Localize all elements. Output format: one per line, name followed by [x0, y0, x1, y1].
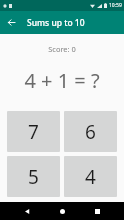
staticText: 7	[28, 119, 39, 145]
staticText: 4	[85, 164, 96, 190]
staticText: 6	[85, 119, 96, 145]
button[interactable]: 4	[64, 156, 117, 197]
staticText: Sums up to 10	[27, 17, 85, 29]
staticText: 4 + 1 = ?	[24, 67, 100, 94]
button[interactable]: Back	[3, 14, 20, 31]
button[interactable]: Recent apps	[89, 203, 105, 219]
button[interactable]: 5	[7, 156, 60, 197]
button[interactable]: Back	[19, 203, 35, 219]
button[interactable]: 6	[64, 111, 117, 152]
staticText: 10:59	[109, 2, 122, 9]
button[interactable]: Home	[54, 203, 70, 219]
staticText: 5	[28, 164, 39, 190]
button[interactable]: 7	[7, 111, 60, 152]
staticText: Score: 0	[48, 44, 76, 54]
